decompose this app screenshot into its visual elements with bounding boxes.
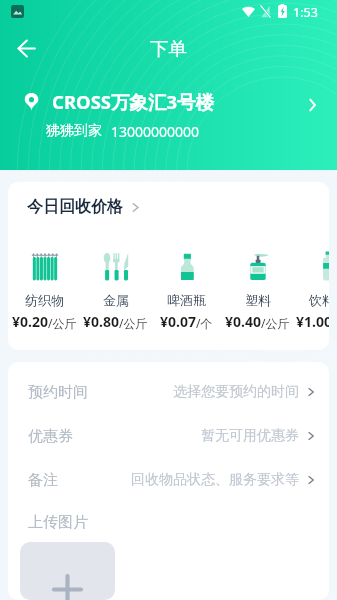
- staticText: 预约时间: [28, 383, 88, 402]
- staticText: ¥0.80: [83, 312, 119, 331]
- button[interactable]: 今日回收价格: [8, 182, 329, 232]
- staticText: 回收物品状态、服务要求等: [131, 471, 299, 489]
- button[interactable]: 纺织物: [9, 251, 80, 331]
- staticText: 暂无可用优惠券: [201, 427, 299, 445]
- button[interactable]: CROSS万象汇3号楼: [0, 84, 337, 146]
- staticText: 狒狒到家: [46, 122, 102, 140]
- staticText: 备注: [28, 471, 58, 490]
- staticText: 上传图片: [28, 513, 88, 532]
- staticText: 今日回收价格: [27, 197, 123, 217]
- button[interactable]: 塑料: [222, 251, 293, 331]
- staticText: 啤酒瓶: [167, 292, 206, 308]
- button[interactable]: 饮料瓶: [293, 251, 329, 331]
- button[interactable]: 金属: [80, 251, 151, 331]
- button[interactable]: 备注: [8, 458, 329, 502]
- button[interactable]: 啤酒瓶: [151, 251, 222, 331]
- staticText: 金属: [103, 292, 129, 308]
- other: Change address: [301, 94, 323, 116]
- button[interactable]: 优惠券: [8, 414, 329, 458]
- staticText: CROSS万象汇3号楼: [52, 89, 215, 114]
- staticText: /公斤: [261, 315, 290, 331]
- staticText: 1:53: [293, 4, 318, 21]
- staticText: ¥1.00: [296, 312, 329, 331]
- staticText: 优惠券: [28, 427, 73, 446]
- staticText: /个: [196, 315, 213, 331]
- staticText: ¥0.20: [12, 312, 48, 331]
- staticText: /公斤: [119, 315, 148, 331]
- button[interactable]: Back: [8, 30, 44, 66]
- staticText: 选择您要预约的时间: [173, 383, 299, 401]
- staticText: ¥0.07: [160, 312, 196, 331]
- staticText: /公斤: [48, 315, 77, 331]
- staticText: ¥0.40: [225, 312, 261, 331]
- staticText: 下单: [150, 37, 187, 60]
- button[interactable]: 预约时间: [8, 370, 329, 414]
- staticText: 13000000000: [111, 122, 200, 141]
- staticText: 塑料: [245, 292, 271, 308]
- staticText: 饮料瓶: [309, 292, 329, 308]
- button[interactable]: Add photo: [20, 542, 115, 600]
- staticText: 纺织物: [25, 292, 64, 308]
